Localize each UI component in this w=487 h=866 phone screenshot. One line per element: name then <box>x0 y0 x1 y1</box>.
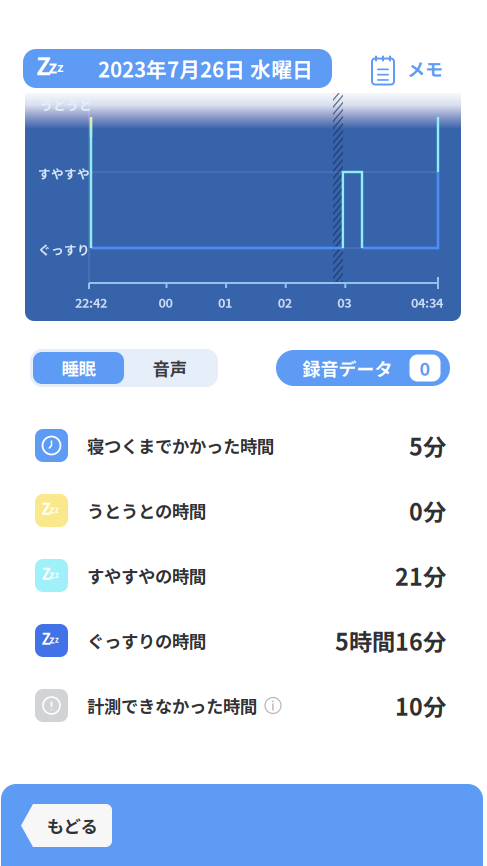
staticText: ぐっすり <box>38 240 90 258</box>
staticText: すやすやの時間 <box>87 563 206 588</box>
staticText: 録音データ <box>302 355 392 381</box>
staticText: 01 <box>218 293 232 311</box>
button[interactable]: 音声 <box>124 352 215 384</box>
staticText: Z <box>41 627 50 649</box>
staticText: 2023年7月26日 水曜日 <box>98 53 313 83</box>
staticText: 計測できなかった時間 <box>87 693 257 718</box>
button[interactable]: もどる <box>21 804 112 847</box>
staticText: 音声 <box>152 355 186 381</box>
staticText: 10分 <box>395 689 446 722</box>
button[interactable]: 寝つくまでかかった時間 <box>0 413 487 478</box>
staticText: もどる <box>46 813 97 838</box>
staticText: すやすや <box>38 164 90 182</box>
staticText: 5時間16分 <box>335 624 446 657</box>
staticText: i <box>271 696 275 714</box>
staticText: z <box>57 57 64 76</box>
staticText: 5分 <box>409 429 446 462</box>
staticText: z <box>49 631 55 647</box>
button[interactable]: メモ <box>370 52 443 84</box>
staticText: 寝つくまでかかった時間 <box>87 433 274 458</box>
staticText: Z <box>41 562 50 584</box>
staticText: 03 <box>337 293 351 311</box>
staticText: z <box>55 568 59 580</box>
staticText: 睡眠 <box>61 355 95 381</box>
staticText: 0 <box>419 355 430 381</box>
staticText: 00 <box>158 293 172 311</box>
staticText: うとうと <box>40 95 92 114</box>
button[interactable]: Z <box>23 49 332 88</box>
button[interactable]: Z <box>0 608 487 673</box>
staticText: z <box>48 53 57 78</box>
staticText: 02 <box>278 293 292 311</box>
staticText: 22:42 <box>75 293 107 311</box>
staticText: Z <box>41 497 50 519</box>
staticText: z <box>55 503 59 515</box>
button[interactable]: Z <box>0 543 487 608</box>
staticText: z <box>49 501 55 517</box>
staticText: 0分 <box>409 494 446 527</box>
button[interactable]: Z <box>0 478 487 543</box>
staticText: ぐっすりの時間 <box>87 628 206 653</box>
staticText: Z <box>36 47 51 82</box>
staticText: 21分 <box>395 559 446 592</box>
staticText: z <box>49 566 55 582</box>
staticText: メモ <box>407 55 443 82</box>
staticText: うとうとの時間 <box>87 498 206 523</box>
staticText: 04:34 <box>411 293 443 311</box>
button[interactable]: 計測できなかった時間 <box>0 673 487 738</box>
button[interactable]: 睡眠 <box>33 352 124 384</box>
staticText: z <box>55 633 59 645</box>
button[interactable]: 録音データ <box>276 350 450 386</box>
